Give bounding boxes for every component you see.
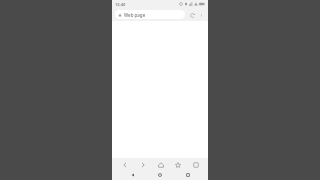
button[interactable]: Home [153, 170, 167, 180]
staticText: 12:40 [115, 2, 126, 7]
button[interactable]: Tabs [190, 159, 201, 170]
staticText: Web page [124, 12, 146, 18]
button[interactable]: Forward [137, 159, 148, 170]
button[interactable]: Web page [115, 10, 185, 19]
button[interactable]: More options [197, 11, 205, 19]
button[interactable]: Reload page [188, 11, 196, 19]
button[interactable]: Bookmarks [172, 159, 183, 170]
button[interactable]: Home [155, 159, 166, 170]
button[interactable]: Back [119, 159, 130, 170]
button[interactable]: Recent apps [181, 170, 195, 180]
button[interactable]: Back [126, 170, 140, 180]
